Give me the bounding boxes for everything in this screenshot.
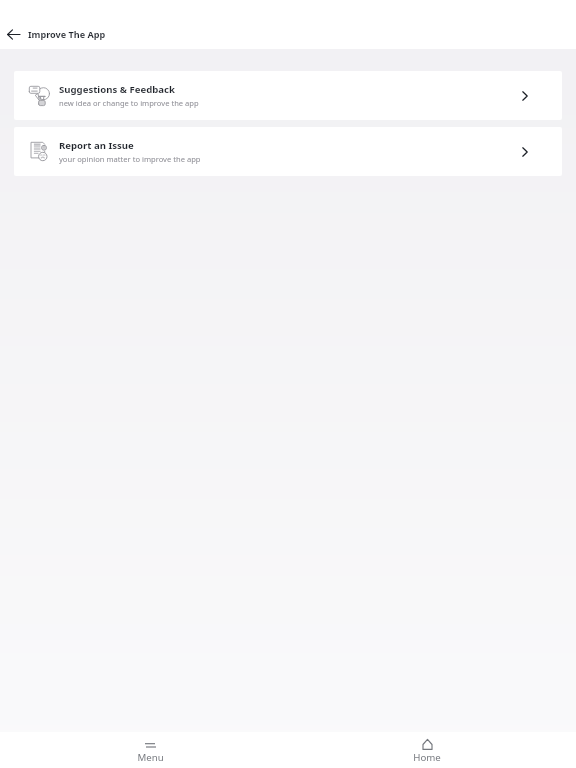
button[interactable]: Home <box>392 732 462 768</box>
staticText: Home <box>413 751 441 764</box>
staticText: new idea or change to improve the app <box>59 98 199 108</box>
staticText: Menu <box>137 751 164 764</box>
staticText: your opinion matter to improve the app <box>59 154 201 164</box>
staticText: Suggestions & Feedback <box>59 83 175 96</box>
button[interactable]: Back <box>0 19 26 49</box>
button[interactable]: Menu <box>115 732 185 768</box>
button[interactable]: Suggestions & Feedback <box>14 71 562 120</box>
staticText: Report an Issue <box>59 139 134 152</box>
staticText: Improve The App <box>28 28 106 40</box>
button[interactable]: Report an Issue <box>14 127 562 176</box>
